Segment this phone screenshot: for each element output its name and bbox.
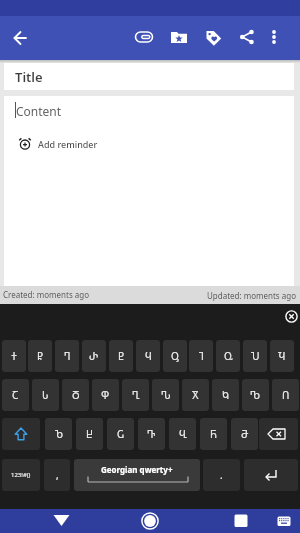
button[interactable]: Ⴟ bbox=[182, 379, 209, 411]
button[interactable] bbox=[170, 29, 188, 45]
button[interactable]: Ⴓ bbox=[163, 340, 187, 372]
staticText: Ⴕ bbox=[11, 349, 18, 363]
button[interactable]: . bbox=[203, 459, 240, 491]
button[interactable]: Ⴚ bbox=[107, 418, 134, 450]
staticText: Ⴆ bbox=[55, 427, 63, 441]
button[interactable]: Ⴂ bbox=[122, 379, 149, 411]
button[interactable]: Ⴊ bbox=[242, 379, 269, 411]
button[interactable] bbox=[277, 516, 291, 526]
button[interactable]: Ⴞ bbox=[76, 418, 103, 450]
button[interactable]: Ⴑ bbox=[32, 379, 59, 411]
button[interactable]: Ⴆ bbox=[45, 418, 72, 450]
button[interactable] bbox=[239, 29, 255, 45]
staticText: Ⴟ bbox=[192, 388, 199, 402]
staticText: Ⴗ bbox=[145, 349, 152, 363]
staticText: Content bbox=[16, 103, 62, 119]
staticText: Add reminder bbox=[38, 138, 98, 150]
staticText: Georgian qwerty+ bbox=[101, 464, 173, 475]
staticText: Ⴍ bbox=[224, 349, 233, 363]
button[interactable] bbox=[141, 512, 159, 530]
staticText: Ⴊ bbox=[250, 388, 261, 402]
staticText: Ⴑ bbox=[42, 388, 49, 402]
button[interactable]: , bbox=[44, 459, 70, 491]
button[interactable]: Ⴌ bbox=[200, 418, 227, 450]
staticText: . bbox=[220, 468, 223, 482]
button[interactable]: Ⴈ bbox=[189, 340, 213, 372]
staticText: Ⴠ bbox=[161, 388, 171, 402]
staticText: Ⴅ bbox=[147, 427, 156, 441]
button[interactable]: Ⴏ bbox=[270, 340, 294, 372]
button[interactable] bbox=[2, 418, 40, 450]
button[interactable]: Ⴍ bbox=[216, 340, 240, 372]
staticText: Ⴚ bbox=[117, 427, 125, 441]
staticText: Ⴀ bbox=[12, 388, 19, 402]
button[interactable]: Ⴋ bbox=[231, 418, 258, 450]
staticText: Ⴔ bbox=[101, 388, 110, 402]
button[interactable]: Ⴒ bbox=[109, 340, 133, 372]
staticText: Updated: moments ago bbox=[207, 290, 297, 301]
staticText: Ⴓ bbox=[171, 349, 179, 363]
staticText: Ⴌ bbox=[210, 427, 218, 441]
button[interactable]: Ⴄ bbox=[55, 340, 79, 372]
button[interactable] bbox=[12, 30, 28, 46]
staticText: 123!#() bbox=[11, 471, 31, 479]
staticText: Ⴈ bbox=[199, 349, 204, 363]
button[interactable] bbox=[259, 418, 298, 450]
staticText: Ⴄ bbox=[64, 349, 71, 363]
staticText: Ⴏ bbox=[278, 349, 286, 363]
button[interactable] bbox=[205, 29, 222, 46]
button[interactable]: Add reminder bbox=[18, 137, 138, 153]
staticText: Ⴉ bbox=[222, 388, 230, 402]
button[interactable]: Title bbox=[4, 63, 294, 90]
staticText: Ⴖ bbox=[282, 388, 290, 402]
button[interactable]: Ⴁ bbox=[169, 418, 196, 450]
staticText: Ⴂ bbox=[132, 388, 140, 402]
staticText: Ⴋ bbox=[241, 427, 249, 441]
button[interactable]: Ⴕ bbox=[2, 340, 26, 372]
staticText: Ⴎ bbox=[251, 349, 260, 363]
button[interactable]: 123!#() bbox=[2, 459, 40, 491]
button[interactable]: Content bbox=[4, 96, 294, 286]
staticText: , bbox=[56, 468, 59, 482]
staticText: Ⴃ bbox=[72, 388, 80, 402]
button[interactable]: Ⴔ bbox=[92, 379, 119, 411]
button[interactable]: Ⴗ bbox=[136, 340, 160, 372]
button[interactable]: Ⴖ bbox=[272, 379, 299, 411]
button[interactable]: Ⴃ bbox=[62, 379, 89, 411]
button[interactable]: Georgian qwerty+ bbox=[74, 459, 200, 491]
button[interactable] bbox=[284, 309, 299, 324]
button[interactable]: Ⴐ bbox=[82, 340, 106, 372]
staticText: Ⴜ bbox=[37, 349, 44, 363]
staticText: Ⴞ bbox=[86, 427, 93, 441]
button[interactable]: Ⴉ bbox=[212, 379, 239, 411]
button[interactable] bbox=[234, 514, 248, 528]
button[interactable] bbox=[244, 459, 298, 491]
button[interactable]: Ⴅ bbox=[138, 418, 165, 450]
staticText: Ⴁ bbox=[179, 427, 187, 441]
button[interactable] bbox=[135, 29, 153, 45]
staticText: Ⴒ bbox=[118, 349, 125, 363]
button[interactable]: Ⴜ bbox=[28, 340, 52, 372]
staticText: Created: moments ago bbox=[3, 289, 90, 300]
button[interactable]: Ⴎ bbox=[243, 340, 267, 372]
button[interactable] bbox=[268, 29, 280, 45]
button[interactable] bbox=[52, 512, 71, 530]
button[interactable]: Ⴠ bbox=[152, 379, 179, 411]
button[interactable]: Ⴀ bbox=[2, 379, 29, 411]
staticText: Ⴐ bbox=[89, 349, 99, 363]
staticText: Title bbox=[15, 68, 43, 86]
